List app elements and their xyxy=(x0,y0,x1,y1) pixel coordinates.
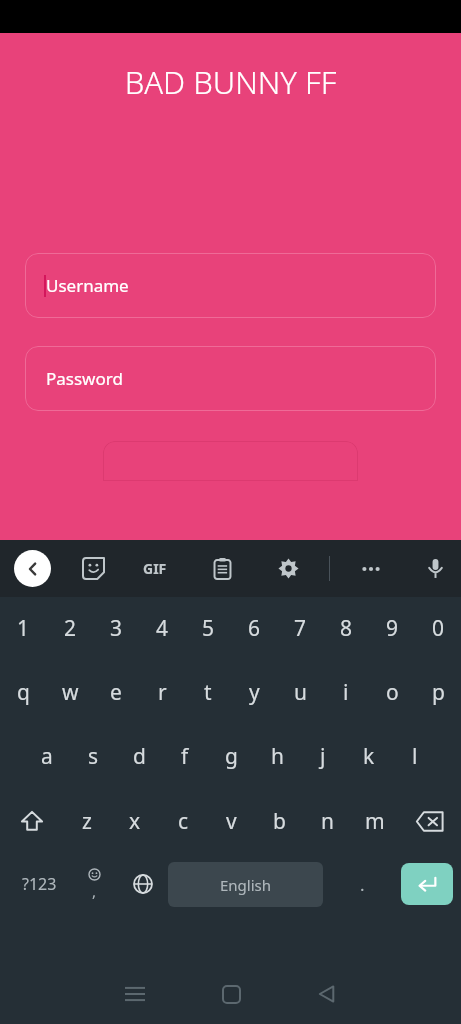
button[interactable]: ?123 xyxy=(8,861,70,907)
button[interactable]: Stickers xyxy=(75,550,112,587)
button[interactable]: Voice input xyxy=(417,550,454,587)
staticText: z xyxy=(82,807,92,836)
staticText: w xyxy=(62,678,79,707)
staticText: Username xyxy=(46,274,129,297)
staticText: p xyxy=(432,678,445,707)
button[interactable]: d xyxy=(116,739,162,773)
button[interactable]: 7 xyxy=(277,611,323,645)
button[interactable]: 0 xyxy=(415,611,461,645)
staticText: ?123 xyxy=(22,873,57,895)
button[interactable]: Back xyxy=(279,964,375,1024)
button[interactable]: r xyxy=(139,675,185,709)
button[interactable]: c xyxy=(159,803,207,839)
staticText: 7 xyxy=(294,614,307,643)
staticText: o xyxy=(386,678,399,707)
button[interactable]: z xyxy=(63,803,111,839)
button[interactable]: v xyxy=(207,803,255,839)
button[interactable]: English xyxy=(168,862,323,907)
button[interactable]: 5 xyxy=(185,611,231,645)
staticText: e xyxy=(110,678,122,707)
button[interactable]: 3 xyxy=(93,611,139,645)
staticText: Password xyxy=(46,367,123,390)
staticText: x xyxy=(129,807,141,836)
button[interactable]: j xyxy=(300,739,346,773)
staticText: q xyxy=(17,678,30,707)
button[interactable]: . xyxy=(323,861,401,907)
staticText: j xyxy=(320,742,326,771)
button[interactable]: Clipboard xyxy=(204,550,241,587)
staticText: h xyxy=(271,742,284,771)
button[interactable]: l xyxy=(392,739,438,773)
staticText: b xyxy=(273,807,286,836)
staticText: f xyxy=(181,742,189,771)
staticText: 1 xyxy=(17,614,30,643)
staticText: d xyxy=(133,742,146,771)
staticText: l xyxy=(412,742,418,771)
staticText: t xyxy=(204,678,212,707)
button[interactable]: Settings xyxy=(270,550,307,587)
button[interactable]: n xyxy=(303,803,351,839)
staticText: 6 xyxy=(248,614,261,643)
button[interactable]: e xyxy=(93,675,139,709)
button[interactable]: Delete xyxy=(399,803,461,839)
button[interactable]: q xyxy=(0,675,47,709)
button[interactable]: f xyxy=(162,739,208,773)
staticText: r xyxy=(158,678,167,707)
button[interactable]: 4 xyxy=(139,611,185,645)
staticText: k xyxy=(363,742,375,771)
button[interactable]: Enter xyxy=(401,863,453,905)
staticText: 8 xyxy=(340,614,353,643)
staticText: . xyxy=(360,873,365,896)
button[interactable]: Home xyxy=(183,964,279,1024)
staticText: 4 xyxy=(156,614,169,643)
button[interactable]: Change language xyxy=(118,861,168,907)
button[interactable]: Shift xyxy=(0,803,63,839)
button[interactable]: t xyxy=(185,675,231,709)
staticText: m xyxy=(365,807,385,836)
button[interactable]: u xyxy=(277,675,323,709)
button[interactable]: Recents xyxy=(87,964,183,1024)
button[interactable]: w xyxy=(47,675,93,709)
button[interactable]: o xyxy=(369,675,415,709)
button[interactable]: i xyxy=(323,675,369,709)
button[interactable]: k xyxy=(346,739,392,773)
button[interactable]: x xyxy=(111,803,159,839)
staticText: c xyxy=(178,807,189,836)
button[interactable]: b xyxy=(255,803,303,839)
button[interactable]: p xyxy=(415,675,461,709)
button[interactable]: s xyxy=(70,739,116,773)
button[interactable]: 6 xyxy=(231,611,277,645)
button[interactable]: m xyxy=(351,803,399,839)
button[interactable]: g xyxy=(208,739,254,773)
staticText: BAD BUNNY FF xyxy=(0,61,461,103)
staticText: v xyxy=(226,807,237,836)
staticText: 5 xyxy=(202,614,215,643)
staticText: s xyxy=(88,742,99,771)
button[interactable]: Emoji xyxy=(70,861,118,907)
staticText: 9 xyxy=(386,614,399,643)
button[interactable]: 9 xyxy=(369,611,415,645)
staticText: 2 xyxy=(64,614,77,643)
staticText: i xyxy=(343,678,349,707)
staticText: English xyxy=(220,875,272,895)
button[interactable]: Password xyxy=(25,346,436,411)
staticText: a xyxy=(41,742,53,771)
staticText: GIF xyxy=(143,559,167,578)
button[interactable]: 1 xyxy=(0,611,47,645)
staticText: , xyxy=(92,881,97,901)
button[interactable]: Username xyxy=(25,253,436,318)
button[interactable]: y xyxy=(231,675,277,709)
button[interactable]: h xyxy=(254,739,300,773)
staticText: 3 xyxy=(110,614,123,643)
staticText: y xyxy=(249,678,260,707)
button[interactable]: 8 xyxy=(323,611,369,645)
button[interactable]: Back xyxy=(14,550,51,587)
staticText: n xyxy=(321,807,334,836)
button[interactable]: a xyxy=(23,739,70,773)
button[interactable]: GIF xyxy=(133,550,177,587)
button[interactable]: 2 xyxy=(47,611,93,645)
button[interactable]: More options xyxy=(352,550,389,587)
staticText: u xyxy=(294,678,307,707)
staticText: 0 xyxy=(432,614,445,643)
